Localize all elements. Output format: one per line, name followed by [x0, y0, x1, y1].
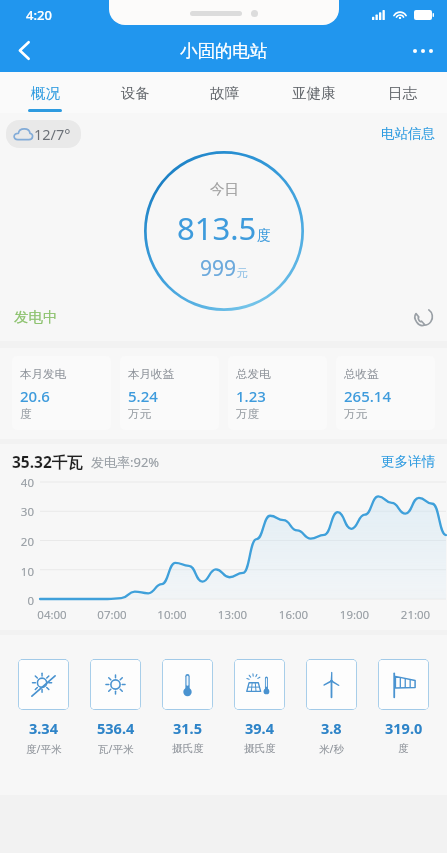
- staticText: 10: [0, 564, 34, 580]
- staticText: 本月发电: [20, 367, 66, 381]
- staticText: 04:00: [22, 607, 82, 623]
- staticText: 20.6: [20, 386, 50, 406]
- staticText: 21:00: [385, 607, 446, 623]
- button[interactable]: 日志: [358, 72, 447, 113]
- staticText: 万元: [344, 407, 367, 421]
- staticText: 999: [200, 254, 237, 283]
- staticText: 31.5: [173, 718, 202, 738]
- staticText: 265.14: [344, 386, 391, 406]
- staticText: 更多详情: [381, 453, 435, 470]
- staticText: 19:00: [324, 607, 385, 623]
- button[interactable]: 总发电: [228, 356, 327, 430]
- staticText: 电站信息: [381, 125, 435, 142]
- staticText: 319.0: [385, 718, 423, 738]
- button[interactable]: 亚健康: [269, 72, 358, 113]
- staticText: 3.8: [321, 718, 342, 738]
- staticText: 35.32千瓦: [12, 451, 83, 472]
- staticText: 日志: [388, 84, 417, 102]
- button[interactable]: 本月发电: [12, 356, 111, 430]
- staticText: 发电率:92%: [91, 453, 160, 471]
- staticText: 度/平米: [26, 742, 62, 756]
- staticText: 总发电: [236, 367, 271, 381]
- staticText: 536.4: [97, 718, 135, 738]
- button[interactable]: 总收益: [336, 356, 435, 430]
- staticText: 12/7°: [34, 124, 71, 144]
- staticText: 813.5: [177, 207, 257, 249]
- button[interactable]: 瓦/平米: [82, 659, 149, 756]
- staticText: 瓦/平米: [98, 742, 134, 756]
- staticText: 万度: [236, 407, 259, 421]
- button[interactable]: 更多详情: [379, 451, 437, 472]
- staticText: 万元: [128, 407, 151, 421]
- button[interactable]: 故障: [180, 72, 269, 113]
- staticText: 10:00: [142, 607, 202, 623]
- staticText: 16:00: [263, 607, 324, 623]
- button[interactable]: 摄氏度: [154, 659, 221, 755]
- button[interactable]: 度/平米: [10, 659, 77, 756]
- staticText: 小固的电站: [180, 40, 268, 62]
- button[interactable]: 12/7°: [6, 120, 81, 148]
- staticText: 30: [0, 504, 34, 520]
- staticText: 概况: [31, 84, 60, 102]
- staticText: 40: [0, 475, 34, 491]
- staticText: 摄氏度: [244, 742, 276, 755]
- staticText: 39.4: [245, 718, 274, 738]
- staticText: 故障: [210, 84, 239, 102]
- staticText: 5.24: [128, 386, 158, 406]
- button[interactable]: Call: [408, 304, 436, 332]
- button[interactable]: 本月收益: [120, 356, 219, 430]
- staticText: 4:20: [26, 6, 52, 24]
- staticText: 总收益: [344, 367, 379, 381]
- button[interactable]: 米/秒: [298, 659, 365, 756]
- staticText: 20: [0, 534, 34, 550]
- button[interactable]: 度: [370, 659, 437, 755]
- staticText: 度: [257, 227, 271, 245]
- button[interactable]: 概况: [0, 72, 90, 113]
- button[interactable]: 设备: [90, 72, 180, 113]
- button[interactable]: Back: [0, 29, 48, 72]
- staticText: 本月收益: [128, 367, 174, 381]
- staticText: 07:00: [82, 607, 142, 623]
- staticText: 度: [20, 407, 32, 421]
- staticText: 米/秒: [319, 742, 344, 756]
- staticText: 发电中: [14, 308, 58, 326]
- staticText: 1.23: [236, 386, 266, 406]
- button[interactable]: More options: [399, 29, 447, 72]
- button[interactable]: 摄氏度: [226, 659, 293, 755]
- staticText: 度: [398, 742, 409, 755]
- staticText: 0: [0, 593, 34, 609]
- staticText: 设备: [121, 84, 150, 102]
- button[interactable]: 电站信息: [377, 121, 439, 146]
- staticText: 3.34: [29, 718, 58, 738]
- staticText: 13:00: [202, 607, 263, 623]
- staticText: 亚健康: [292, 84, 336, 102]
- staticText: 摄氏度: [172, 742, 204, 755]
- staticText: 今日: [210, 180, 239, 198]
- staticText: 元: [237, 266, 248, 280]
